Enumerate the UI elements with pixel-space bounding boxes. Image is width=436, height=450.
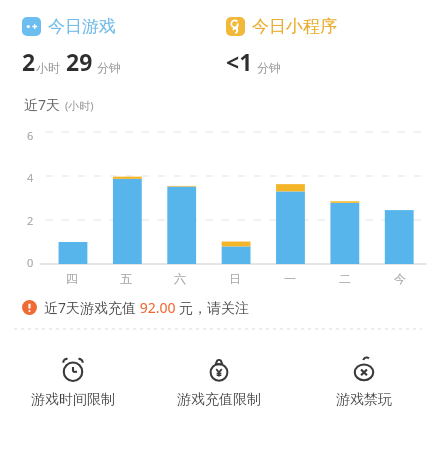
staticText: 近7天	[24, 95, 61, 114]
other: Warning	[22, 300, 37, 315]
staticText: 五	[120, 271, 132, 286]
staticText: 2	[27, 213, 34, 228]
button[interactable]: Game recharge limit	[146, 351, 291, 413]
staticText: 今日游戏	[48, 16, 116, 37]
staticText: 小时	[36, 60, 60, 75]
staticText: 今日小程序	[252, 16, 337, 37]
staticText: 游戏时间限制	[31, 391, 115, 409]
staticText: <1	[226, 46, 253, 77]
staticText: 日	[229, 271, 241, 286]
staticText: 0	[27, 255, 34, 270]
staticText: 今	[394, 271, 406, 286]
other: Games today	[22, 17, 41, 36]
staticText: 近7天游戏充值 92.00 元，请关注	[44, 298, 250, 317]
button[interactable]: Game ban	[291, 351, 436, 413]
staticText: 四	[66, 271, 78, 286]
staticText: 一	[284, 271, 296, 286]
staticText: 29	[66, 46, 93, 77]
staticText: 分钟	[97, 60, 121, 75]
staticText: 游戏充值限制	[177, 391, 261, 409]
staticText: 六	[174, 271, 186, 286]
staticText: 二	[339, 271, 351, 286]
staticText: 2	[22, 46, 36, 77]
staticText: (小时)	[65, 98, 94, 113]
button[interactable]: Game time limit	[0, 351, 146, 413]
other: Mini programs today	[226, 17, 245, 36]
staticText: 游戏禁玩	[336, 391, 392, 409]
staticText: 4	[27, 170, 34, 185]
staticText: 6	[27, 128, 34, 143]
staticText: 分钟	[257, 60, 281, 75]
